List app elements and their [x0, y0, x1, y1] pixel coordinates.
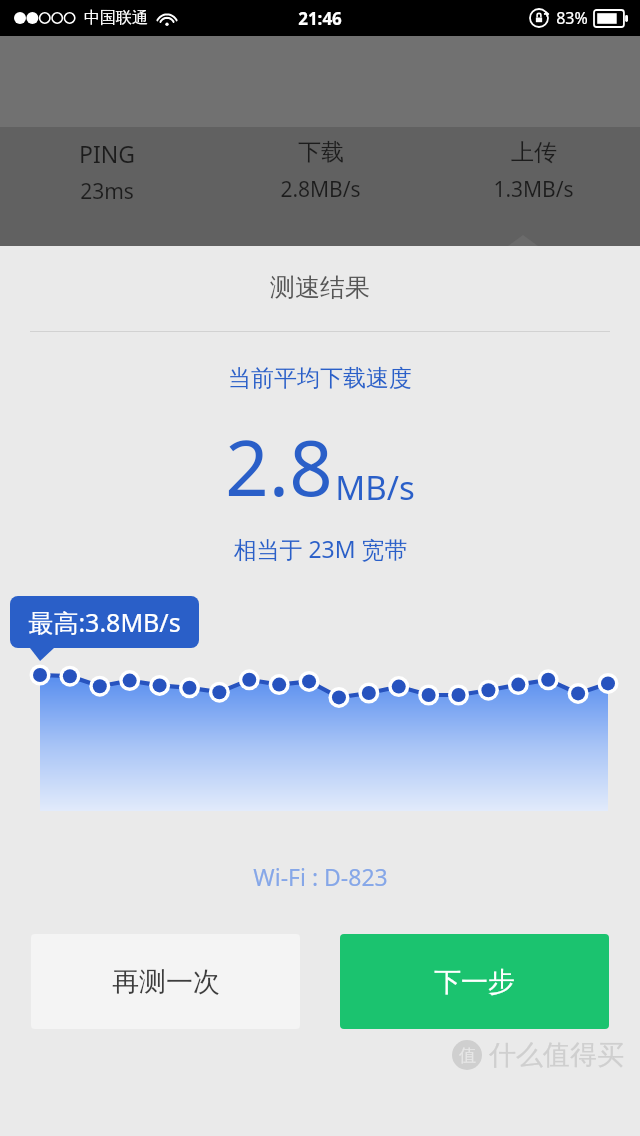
staticText: 83% — [556, 7, 588, 29]
staticText: 什么值得买 — [489, 1038, 624, 1072]
button[interactable]: 下一步 — [340, 934, 609, 1029]
staticText: 1.3MB/s — [493, 175, 574, 204]
staticText: 相当于 23M 宽带 — [233, 533, 408, 564]
staticText: 最高:3.8MB/s — [28, 605, 181, 639]
button[interactable]: 再测一次 — [31, 934, 300, 1029]
staticText: 中国联通 — [84, 8, 148, 28]
staticText: 值 — [459, 1045, 476, 1066]
staticText: 21:46 — [298, 7, 342, 30]
staticText: 再测一次 — [112, 965, 220, 999]
button[interactable]: 最高:3.8MB/s — [10, 596, 199, 648]
staticText: Wi-Fi : D-823 — [253, 861, 388, 892]
staticText: 上传 — [511, 138, 557, 167]
staticText: PING — [79, 138, 135, 169]
staticText: 当前平均下载速度 — [228, 364, 412, 393]
staticText: 23ms — [80, 177, 134, 206]
staticText: MB/s — [335, 465, 415, 510]
staticText: 下一步 — [434, 965, 515, 999]
staticText: 2.8MB/s — [280, 175, 361, 204]
staticText: 测速结果 — [270, 272, 370, 303]
staticText: 2.8 — [225, 415, 333, 519]
staticText: 下载 — [298, 138, 344, 167]
